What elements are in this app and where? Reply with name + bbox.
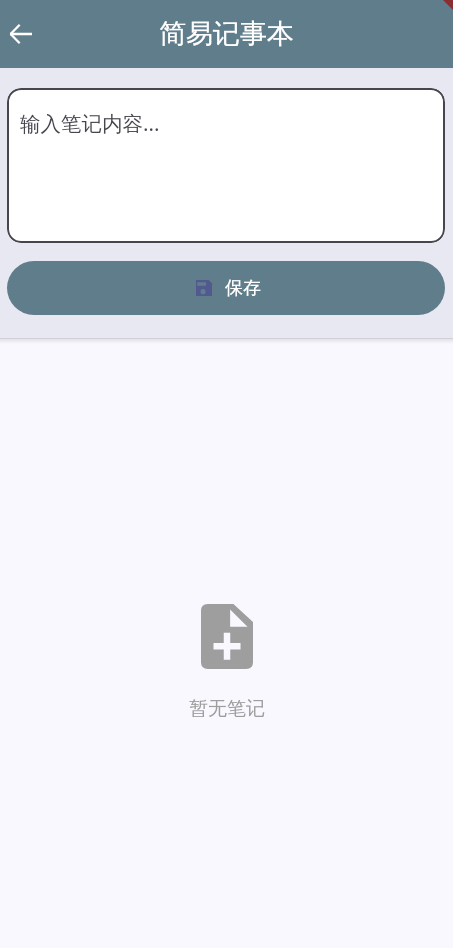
staticText: 输入笔记内容... <box>20 109 160 137</box>
button[interactable]: 输入笔记内容... <box>7 88 445 243</box>
staticText: 暂无笔记 <box>189 697 265 721</box>
staticText: 简易记事本 <box>159 17 294 51</box>
staticText: 保存 <box>225 277 261 300</box>
button[interactable]: Back <box>1 14 41 54</box>
button[interactable]: 保存 <box>7 261 445 315</box>
